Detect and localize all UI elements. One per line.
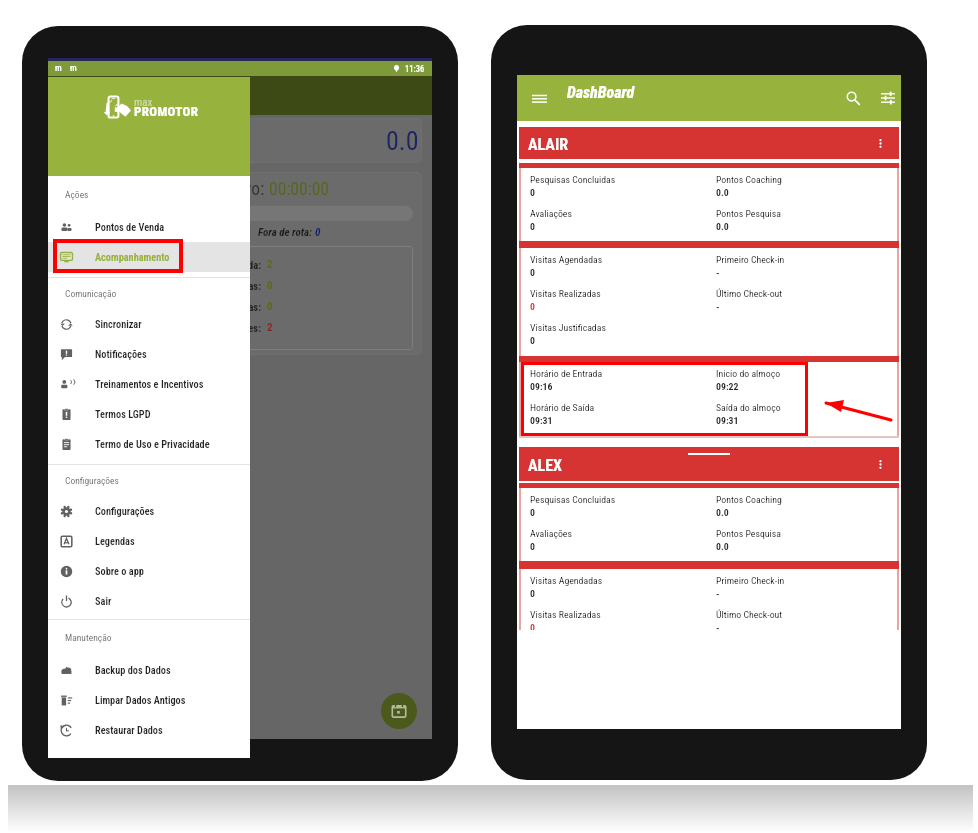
staticText: Horário de Saída: [530, 402, 595, 413]
button[interactable]: Acompanhamento: [48, 242, 250, 272]
staticText: Comunicação: [65, 288, 117, 299]
staticText: 0.0: [386, 126, 419, 156]
staticText: Visitas Realizadas: [530, 609, 601, 620]
staticText: 09:31: [530, 415, 553, 426]
staticText: Restaurar Dados: [95, 724, 163, 736]
staticText: Pontos Coaching: [716, 174, 782, 185]
staticText: Visitas Agendadas: [530, 575, 603, 586]
button[interactable]: ALAIR: [519, 127, 899, 159]
button[interactable]: More options for ALEX: [869, 453, 891, 475]
staticText: 0: [267, 300, 273, 313]
staticText: Notificações: [95, 348, 147, 360]
staticText: 0.0: [716, 507, 729, 518]
staticText: Visitas Agendadas: [530, 254, 603, 265]
staticText: 0: [315, 226, 321, 239]
staticText: ALEX: [528, 456, 563, 475]
staticText: 0: [530, 622, 535, 630]
button[interactable]: Sair: [48, 586, 250, 616]
staticText: Treinamentos e Incentivos: [95, 378, 204, 390]
button[interactable]: Treinamentos e Incentivos: [48, 369, 250, 399]
button[interactable]: Backup dos Dados: [48, 655, 250, 685]
staticText: Ações: [65, 189, 89, 200]
button[interactable]: Termos LGPD: [48, 399, 250, 429]
staticText: -: [716, 588, 720, 599]
staticText: Sobre o app: [95, 565, 144, 577]
staticText: Pontos de Venda: [95, 221, 165, 233]
staticText: Sincronizar: [95, 318, 142, 330]
button[interactable]: Search: [840, 85, 866, 111]
staticText: -: [716, 301, 720, 312]
button[interactable]: Termo de Uso e Privacidade: [48, 429, 250, 459]
staticText: Avaliações: [530, 208, 572, 219]
staticText: Legendas: [95, 535, 135, 547]
button[interactable]: Sincronizar: [48, 309, 250, 339]
button[interactable]: Sobre o app: [48, 556, 250, 586]
button[interactable]: Limpar Dados Antigos: [48, 685, 250, 715]
staticText: ALAIR: [528, 135, 569, 154]
staticText: Visitas justificadas:: [65, 301, 261, 313]
staticText: 00:00:00: [269, 179, 330, 200]
staticText: 0: [530, 507, 535, 518]
staticText: Termo de Uso e Privacidade: [95, 438, 210, 450]
button[interactable]: Open menu: [526, 85, 552, 111]
staticText: m: [55, 63, 62, 74]
staticText: Fora de rota:: [258, 226, 315, 239]
staticText: 2: [267, 258, 273, 271]
staticText: 0.0: [716, 187, 729, 198]
staticText: Visitas Realizadas: [530, 288, 601, 299]
staticText: Inicio do almoço: [716, 368, 781, 379]
staticText: 09:22: [716, 381, 739, 392]
staticText: 0: [530, 541, 535, 552]
staticText: 0.0: [716, 221, 729, 232]
staticText: 0: [530, 588, 535, 599]
button[interactable]: Legendas: [48, 526, 250, 556]
staticText: Pontos de venda:: [65, 259, 261, 271]
staticText: Último Check-out: [716, 609, 783, 620]
staticText: DashBoard: [567, 83, 635, 102]
staticText: Pesquisas Concluidas: [530, 494, 616, 505]
staticText: Acompanhamento: [95, 251, 170, 263]
button[interactable]: ALEX: [519, 447, 899, 481]
staticText: Visitas Justificadas: [530, 322, 606, 333]
staticText: Configurações: [65, 475, 119, 486]
staticText: Visitas realizadas:: [65, 280, 261, 292]
staticText: Manutenção: [65, 632, 112, 643]
staticText: m: [70, 63, 77, 74]
staticText: 0: [530, 187, 535, 198]
button[interactable]: Restaurar Dados: [48, 715, 250, 745]
staticText: Último Check-out: [716, 288, 783, 299]
staticText: -: [716, 622, 720, 630]
button[interactable]: Pontos de Venda: [48, 212, 250, 242]
staticText: Primeiro Check-in: [716, 575, 785, 586]
staticText: Saída do almoço: [716, 402, 781, 413]
staticText: Limpar Dados Antigos: [95, 694, 186, 706]
staticText: 09:16: [530, 381, 553, 392]
staticText: Configurações: [95, 505, 155, 517]
staticText: max: [134, 96, 153, 109]
staticText: Avaliações: [530, 528, 572, 539]
staticText: 09:31: [716, 415, 739, 426]
staticText: Tempo efetivo:: [162, 179, 265, 200]
staticText: Pesquisas Concluidas: [530, 174, 616, 185]
button[interactable]: Configurações: [48, 496, 250, 526]
staticText: Pontos Pesquisa: [716, 528, 781, 539]
staticText: Pontos Coaching: [716, 494, 782, 505]
staticText: PROMOTOR: [134, 104, 199, 119]
staticText: Termos LGPD: [95, 408, 151, 420]
staticText: 0: [267, 279, 273, 292]
button[interactable]: Filter: [875, 85, 901, 111]
staticText: 0: [530, 335, 535, 346]
button[interactable]: Calendar: [381, 693, 417, 729]
staticText: 0: [530, 267, 535, 278]
staticText: 2: [267, 321, 273, 334]
staticText: Backup dos Dados: [95, 664, 171, 676]
staticText: 0.0: [716, 541, 729, 552]
staticText: 0: [530, 301, 535, 312]
staticText: 0: [530, 221, 535, 232]
staticText: Em rota:: [156, 226, 195, 239]
staticText: Sair: [95, 595, 112, 607]
button[interactable]: More options for ALAIR: [869, 132, 891, 154]
staticText: 11:36: [405, 64, 425, 74]
button[interactable]: Notificações: [48, 339, 250, 369]
